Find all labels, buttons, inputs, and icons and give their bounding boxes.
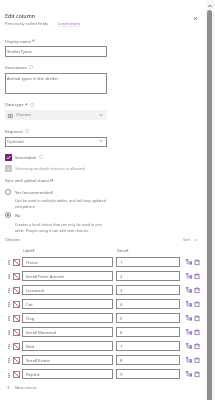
button[interactable]: [5, 165, 87, 172]
button[interactable]: Value 7: [116, 341, 180, 351]
button[interactable]: Choose colour for Dog: [13, 315, 20, 322]
button[interactable]: Description: [5, 73, 107, 94]
button[interactable]: Delete Bird: [194, 343, 200, 349]
staticText: Dog: [26, 315, 35, 321]
staticText: Choices: [5, 237, 20, 243]
staticText: Sort: [183, 237, 191, 242]
staticText: Reptile: [26, 371, 40, 377]
staticText: *: [32, 38, 35, 45]
staticText: *: [32, 248, 35, 255]
button[interactable]: Label Horse: [22, 257, 113, 267]
staticText: Searchable: [15, 155, 37, 161]
button[interactable]: Scrollbar: [207, 10, 212, 400]
button[interactable]: Value 8: [116, 355, 180, 365]
button[interactable]: Add sub-choice for Bird: [186, 343, 192, 349]
button[interactable]: [5, 189, 55, 196]
button[interactable]: Choose colour for Small Exotic: [13, 357, 20, 364]
button[interactable]: Choose colour for Small Farm Animal: [13, 273, 20, 280]
button[interactable]: Data type: Choices: [5, 110, 107, 120]
button[interactable]: Delete Reptile: [194, 371, 200, 377]
button[interactable]: Value 6: [116, 327, 180, 337]
button[interactable]: Label Small Mammal: [22, 327, 113, 337]
staticText: Required: [5, 129, 23, 135]
staticText: Data type: [5, 102, 24, 108]
button[interactable]: Delete Cat: [194, 301, 200, 307]
button[interactable]: [5, 383, 45, 392]
button[interactable]: Value 1: [116, 257, 180, 267]
button[interactable]: Label Cat: [22, 299, 113, 309]
staticText: New choice: [15, 385, 37, 391]
button[interactable]: Label Livestock: [22, 285, 113, 295]
button[interactable]: Choose colour for Livestock: [13, 287, 20, 294]
button[interactable]: Add sub-choice for Reptile: [186, 371, 192, 377]
button[interactable]: Value 3: [116, 285, 180, 295]
button[interactable]: Label Bird: [22, 341, 113, 351]
staticText: Value: [117, 248, 127, 253]
button[interactable]: Add sub-choice for Livestock: [186, 287, 192, 293]
staticText: Creates a local choice that can only be …: [15, 222, 102, 227]
button[interactable]: Display name: [5, 46, 107, 57]
button[interactable]: Label Small Farm Animal: [22, 271, 113, 281]
button[interactable]: Value 5: [116, 313, 180, 323]
button[interactable]: Add sub-choice for Small Mammal: [186, 329, 192, 335]
staticText: 9: [120, 371, 123, 377]
staticText: Horse: [26, 259, 39, 265]
button[interactable]: Label Reptile: [22, 369, 113, 379]
button[interactable]: Delete Small Farm Animal: [194, 273, 200, 279]
button[interactable]: Label Small Exotic: [22, 355, 113, 365]
staticText: Previously called fields.: [5, 21, 50, 27]
staticText: Sync with global choice?: [5, 178, 52, 184]
staticText: 4: [120, 301, 123, 307]
staticText: Edit column: [5, 12, 35, 19]
staticText: No: [15, 213, 21, 219]
button[interactable]: Value 4: [116, 299, 180, 309]
staticText: 2: [120, 273, 123, 279]
staticText: Small Farm Animal: [26, 273, 64, 279]
staticText: 8: [120, 357, 123, 363]
staticText: 7: [120, 343, 123, 349]
staticText: Cat: [26, 301, 33, 307]
button[interactable]: Add sub-choice for Dog: [186, 315, 192, 321]
button[interactable]: Choose colour for Small Mammal: [13, 329, 20, 336]
button[interactable]: Delete Horse: [194, 259, 200, 265]
button[interactable]: Close: [189, 11, 202, 24]
button[interactable]: Choose colour for Horse: [13, 259, 20, 266]
button[interactable]: Label Dog: [22, 313, 113, 323]
staticText: 6: [120, 329, 123, 335]
button[interactable]: Delete Small Exotic: [194, 357, 200, 363]
staticText: 1: [120, 259, 123, 265]
staticText: *: [126, 248, 129, 255]
staticText: Small Exotic: [26, 357, 51, 363]
staticText: *: [25, 102, 28, 109]
button[interactable]: Value 9: [116, 369, 180, 379]
button[interactable]: Choose colour for Bird: [13, 343, 20, 350]
staticText: Choices: [16, 112, 31, 118]
button[interactable]: [5, 212, 31, 219]
staticText: 5: [120, 315, 123, 321]
staticText: Animal types in the shelter: [7, 76, 59, 82]
button[interactable]: [5, 154, 57, 161]
staticText: Bird: [26, 343, 35, 349]
staticText: Small Mammal: [26, 329, 56, 335]
button[interactable]: Add sub-choice for Small Farm Animal: [186, 273, 192, 279]
button[interactable]: Delete Small Mammal: [194, 329, 200, 335]
staticText: Display name: [5, 39, 31, 45]
staticText: everywhere.: [15, 204, 37, 209]
button[interactable]: Choose colour for Cat: [13, 301, 20, 308]
staticText: Label: [23, 248, 33, 253]
button[interactable]: Choose colour for Reptile: [13, 371, 20, 378]
button[interactable]: [181, 236, 199, 245]
button[interactable]: Add sub-choice for Horse: [186, 259, 192, 265]
button[interactable]: Value 2: [116, 271, 180, 281]
staticText: ShelterTypes: [7, 49, 32, 55]
staticText: *: [51, 178, 54, 185]
staticText: table. People using it can add new choic…: [15, 228, 89, 233]
button[interactable]: Add sub-choice for Small Exotic: [186, 357, 192, 363]
button[interactable]: Delete Livestock: [194, 287, 200, 293]
staticText: Optional: [7, 139, 24, 145]
button[interactable]: Required: Optional: [5, 137, 107, 147]
staticText: Description: [5, 65, 28, 71]
button[interactable]: Add sub-choice for Cat: [186, 301, 192, 307]
button[interactable]: Delete Dog: [194, 315, 200, 321]
